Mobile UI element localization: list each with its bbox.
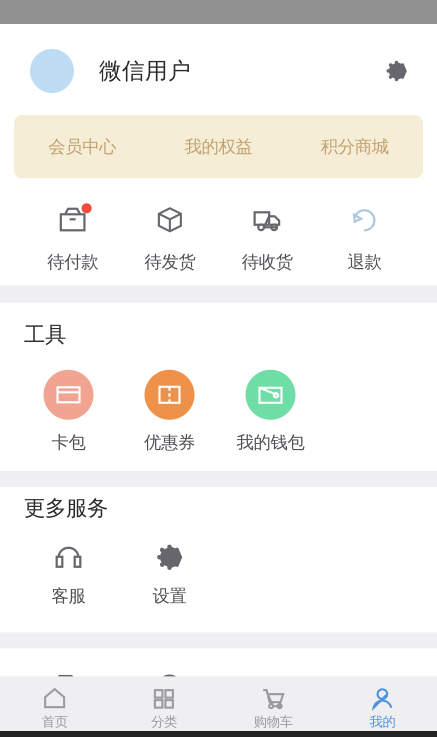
button[interactable]: 设置 [119,543,220,607]
button[interactable]: 待收货 [218,205,316,273]
staticText: 我的 [369,714,395,730]
button[interactable]: 待付款 [24,205,121,273]
staticText: 工具 [24,322,66,348]
staticText: 首页 [42,714,68,730]
staticText: 积分商城 [321,136,389,157]
staticText: 更多服务 [24,495,108,521]
staticText: 退款 [347,251,381,273]
staticText: 待收货 [242,251,293,273]
button[interactable]: 首页 [0,677,109,731]
button[interactable]: 购物车 [218,677,328,731]
staticText: 帮助中心 [34,715,102,736]
button[interactable]: 优惠券 [119,370,220,453]
button[interactable]: 会员中心 [14,115,150,178]
staticText: 微信用户 [99,57,191,85]
button[interactable]: 待发货 [121,205,218,273]
staticText: 待发货 [144,251,195,273]
staticText: 优惠券 [144,432,195,453]
button[interactable]: 帮助中心 [18,673,119,736]
button[interactable]: 退款 [316,205,413,273]
staticText: 关于我们 [135,715,203,736]
button[interactable]: 微信用户 [0,24,437,115]
button[interactable]: 我的钱包 [220,370,321,453]
staticText: 我的钱包 [236,432,304,453]
staticText: 分类 [151,714,177,730]
staticText: 购物车 [254,714,293,730]
staticText: 会员中心 [48,136,116,157]
button[interactable]: 客服 [18,543,119,607]
staticText: 待付款 [47,251,98,273]
button[interactable]: 关于我们 [119,673,220,736]
button[interactable]: 我的权益 [150,115,287,178]
button[interactable]: 卡包 [18,370,119,453]
staticText: 我的权益 [184,136,252,157]
button[interactable]: 积分商城 [287,115,423,178]
button[interactable]: 我的 [328,677,437,731]
staticText: 卡包 [51,432,85,453]
staticText: 客服 [51,585,85,607]
staticText: 设置 [152,585,186,607]
button[interactable]: 分类 [109,677,218,731]
